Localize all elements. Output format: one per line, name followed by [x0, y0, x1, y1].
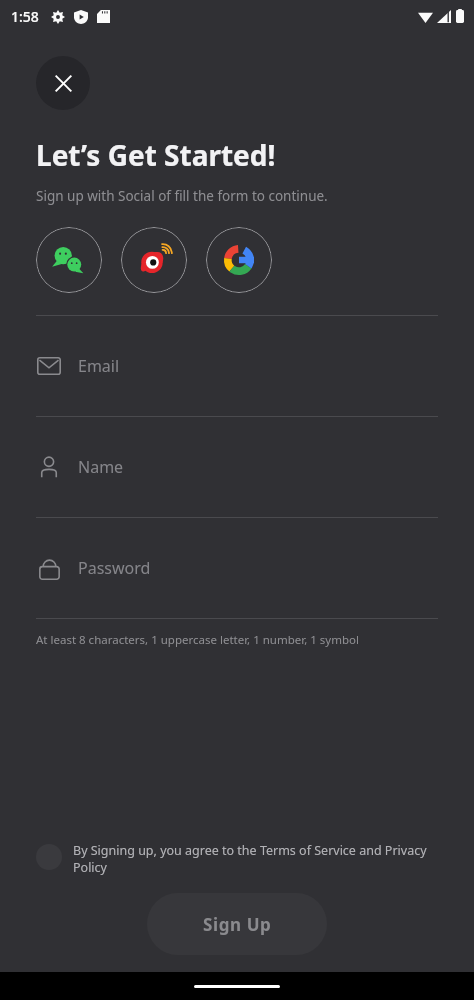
button[interactable]: Close [36, 56, 90, 110]
button[interactable]: Accept terms [36, 844, 62, 870]
staticText: Let’s Get Started! [36, 136, 276, 174]
other: Email field [36, 353, 62, 379]
staticText: By Signing up, you agree to the Terms of… [73, 842, 438, 876]
staticText: At least 8 characters, 1 uppercase lette… [36, 632, 359, 648]
button[interactable]: Sign up with Weibo [121, 227, 187, 293]
button[interactable]: Email field [0, 316, 474, 416]
other: Name field [36, 454, 62, 480]
staticText: Password [78, 557, 151, 579]
staticText: Sign up with Social of fill the form to … [36, 187, 328, 205]
button[interactable]: Name field [0, 417, 474, 517]
staticText: Name [78, 456, 124, 478]
button[interactable]: Sign Up [147, 893, 327, 955]
button[interactable]: Sign up with WeChat [36, 227, 102, 293]
staticText: Email [78, 355, 120, 377]
button[interactable]: Sign up with Google [206, 227, 272, 293]
button[interactable]: Password field [0, 518, 474, 618]
staticText: 1:58 [11, 7, 39, 26]
other: Password field [36, 555, 62, 581]
staticText: Sign Up [203, 913, 272, 936]
